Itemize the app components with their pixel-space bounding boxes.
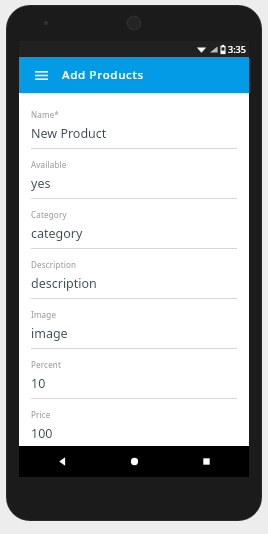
button[interactable]: Image (31, 309, 237, 359)
staticText: Description (31, 259, 77, 270)
button[interactable]: Open navigation drawer (25, 59, 57, 91)
button[interactable]: Available (31, 159, 237, 209)
button[interactable]: Name* (31, 109, 237, 159)
button[interactable]: Price (31, 409, 237, 446)
staticText: image (31, 325, 68, 342)
button[interactable]: Back (47, 446, 77, 477)
staticText: Category (31, 209, 67, 220)
staticText: Image (31, 309, 57, 320)
staticText: yes (31, 175, 51, 192)
staticText: 100 (31, 425, 53, 442)
staticText: Add Products (62, 67, 144, 83)
staticText: category (31, 225, 83, 242)
staticText: New Product (31, 125, 107, 142)
staticText: Percent (31, 359, 62, 370)
button[interactable]: Category (31, 209, 237, 259)
staticText: Price (31, 409, 51, 420)
staticText: Name* (31, 109, 59, 120)
button[interactable]: Percent (31, 359, 237, 409)
staticText: 3:35 (228, 43, 246, 55)
button[interactable]: Description (31, 259, 237, 309)
button[interactable]: Recent apps (191, 446, 221, 477)
staticText: description (31, 275, 97, 292)
button[interactable]: Home (119, 446, 149, 477)
staticText: 10 (31, 375, 46, 392)
staticText: Available (31, 159, 67, 170)
